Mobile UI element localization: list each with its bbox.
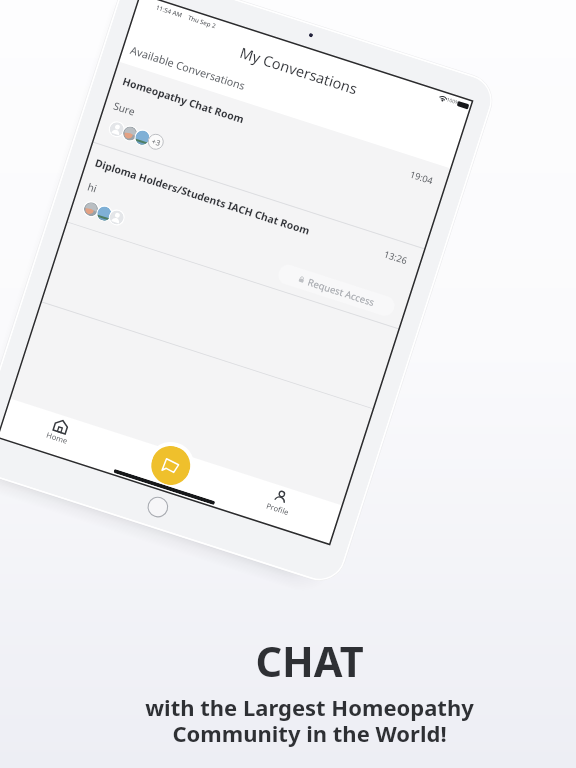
staticText: Request Access <box>306 276 377 309</box>
staticText: Profile <box>265 500 290 517</box>
button[interactable]: Homeopathy Chat Room <box>93 61 451 248</box>
button[interactable]: Profile <box>245 478 313 528</box>
button[interactable]: New conversation <box>146 441 195 490</box>
button[interactable]: Diploma Holders/Students IACH Chat Room <box>67 142 425 328</box>
staticText: Available Conversations <box>128 43 247 94</box>
staticText: 11:54 AM Thu Sep 2 <box>155 3 217 29</box>
staticText: My Conversations <box>237 42 361 99</box>
staticText: hi <box>86 179 99 195</box>
staticText: CHAT <box>255 633 364 690</box>
staticText: +3 <box>150 136 162 148</box>
staticText: Home <box>45 430 69 446</box>
staticText: with the Largest Homeopathy Community in… <box>145 692 474 748</box>
button[interactable]: Home <box>25 407 93 457</box>
button[interactable]: Request Access <box>276 262 397 318</box>
staticText: Diploma Holders/Students IACH Chat Room <box>93 156 312 238</box>
staticText: Sure <box>112 98 137 119</box>
staticText: 13:26 <box>382 248 409 267</box>
staticText: 19:04 <box>408 168 435 187</box>
staticText: Homeopathy Chat Room <box>121 74 246 126</box>
staticText: 100% <box>446 96 460 107</box>
